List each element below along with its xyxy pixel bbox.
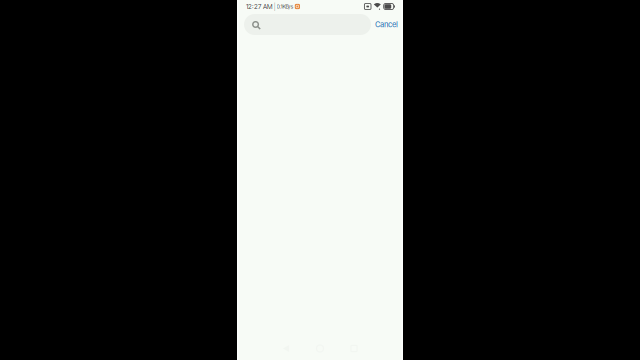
staticText: |: [274, 2, 276, 10]
staticText: Cancel: [375, 20, 398, 29]
button[interactable]: Search: [244, 14, 371, 35]
staticText: 12:27 AM: [246, 2, 273, 10]
button[interactable]: Cancel: [371, 14, 398, 35]
staticText: 0.1KB/s: [277, 3, 294, 10]
